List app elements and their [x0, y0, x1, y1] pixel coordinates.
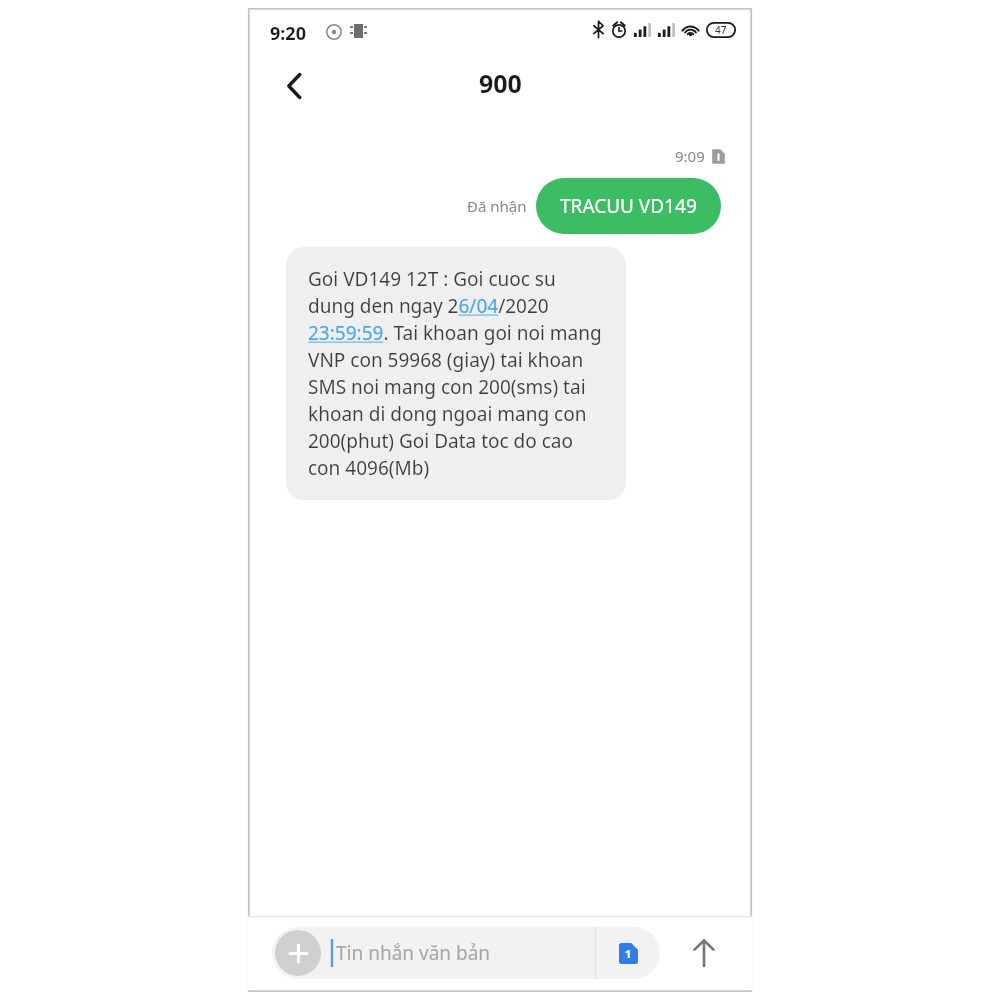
button[interactable]: Add attachment	[272, 927, 660, 979]
staticText: 9:20	[270, 21, 306, 46]
button[interactable]: TRACUU VD149	[536, 178, 721, 234]
staticText: Đã nhận	[467, 196, 527, 216]
button[interactable]: Back	[270, 62, 318, 110]
button[interactable]: Send	[678, 927, 730, 979]
button[interactable]: Goi VD149 12T : Goi cuoc su dung den nga…	[286, 247, 626, 500]
button[interactable]: Add attachment	[275, 930, 321, 976]
staticText: Tin nhắn văn bản	[336, 940, 491, 966]
staticText: 1	[625, 946, 632, 961]
staticText: Goi VD149 12T : Goi cuoc su dung den nga…	[308, 266, 606, 481]
button[interactable]: SIM 1	[596, 927, 660, 979]
staticText: 9:09	[675, 146, 705, 166]
staticText: 900	[479, 66, 522, 100]
staticText: TRACUU VD149	[560, 193, 697, 219]
staticText: 47	[715, 23, 727, 37]
